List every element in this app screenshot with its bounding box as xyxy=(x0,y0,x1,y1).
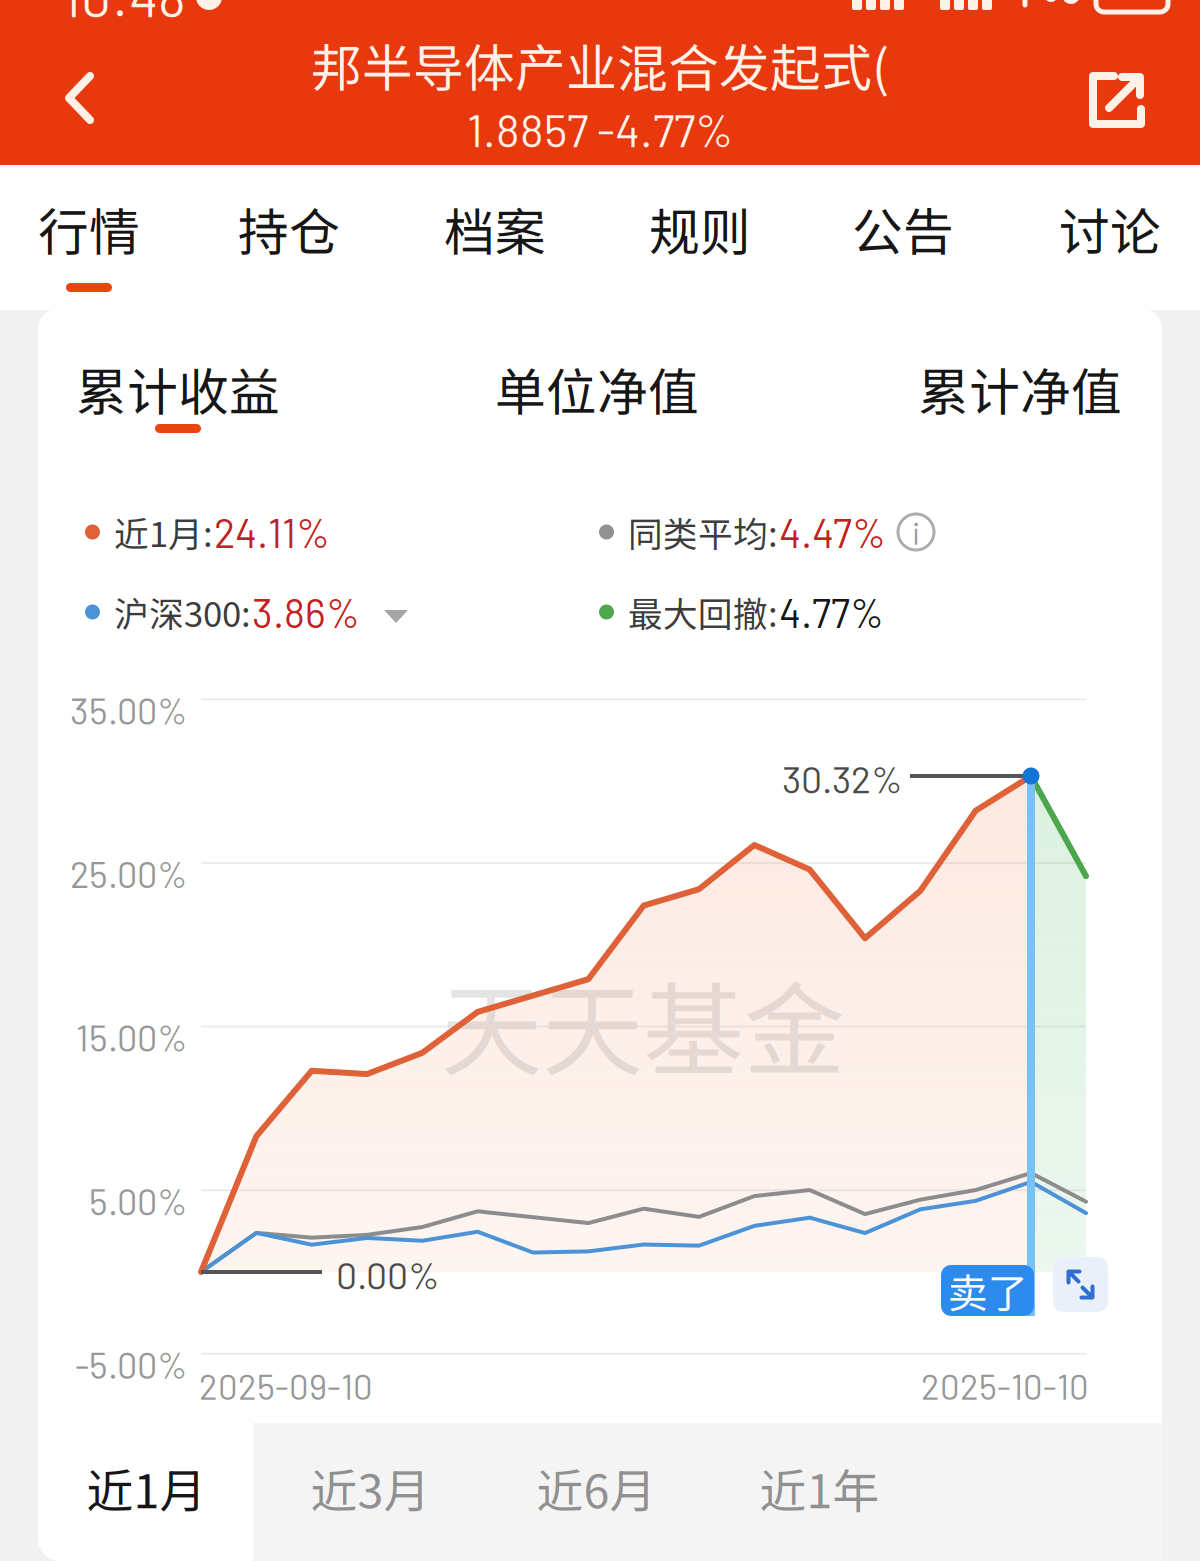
staticText: 档案 xyxy=(444,192,546,265)
staticText: 近1月 xyxy=(86,1454,206,1522)
button[interactable]: 公告 xyxy=(808,165,998,310)
staticText: 行情 xyxy=(38,192,140,265)
button[interactable]: 讨论 xyxy=(1015,165,1200,310)
staticText: 2025-09-10 xyxy=(199,1365,373,1407)
staticText: 近1年 xyxy=(759,1454,879,1522)
staticText: 30.32% xyxy=(782,756,903,801)
staticText: 25.00% xyxy=(70,852,188,895)
button[interactable]: 档案 xyxy=(400,165,590,310)
button[interactable]: Back xyxy=(20,43,140,153)
button[interactable]: 单位净值 xyxy=(477,352,717,444)
staticText: -5.00% xyxy=(75,1343,188,1386)
button[interactable]: 近1年 xyxy=(709,1419,930,1557)
staticText: 累计收益 xyxy=(76,352,280,425)
button[interactable]: 卖了 xyxy=(941,1265,1034,1316)
staticText: 0.00% xyxy=(336,1252,440,1297)
staticText: 15.00% xyxy=(76,1016,188,1059)
button[interactable]: 近3月 xyxy=(260,1419,481,1557)
staticText: 单位净值 xyxy=(495,352,699,425)
staticText: 沪深300: xyxy=(114,587,251,637)
staticText: 规则 xyxy=(649,192,751,265)
staticText: 天天基金 xyxy=(441,950,845,1097)
staticText: 卖了 xyxy=(947,1261,1027,1319)
button[interactable]: 近6月 xyxy=(486,1419,707,1557)
button[interactable]: 累计收益 xyxy=(58,352,298,444)
staticText: 近3月 xyxy=(310,1454,430,1522)
staticText: 邦半导体产业混合发起式( xyxy=(311,28,889,101)
staticText: 讨论 xyxy=(1059,192,1161,265)
staticText: 近1月: xyxy=(114,507,213,557)
button[interactable]: 规则 xyxy=(605,165,795,310)
staticText: 最大回撤: xyxy=(628,587,778,637)
staticText: 同类平均: xyxy=(628,507,778,557)
staticText: 5.00% xyxy=(89,1179,188,1222)
button[interactable]: 近1月 xyxy=(36,1419,257,1557)
staticText: 4.47% xyxy=(779,508,886,556)
button[interactable]: Share xyxy=(1062,45,1172,155)
staticText: 24.11% xyxy=(214,508,330,556)
staticText: 1.8857 -4.77% xyxy=(467,102,733,156)
staticText: 2025-10-10 xyxy=(921,1365,1089,1407)
button[interactable]: Fullscreen xyxy=(1053,1257,1108,1312)
staticText: 累计净值 xyxy=(918,352,1122,425)
staticText: 公告 xyxy=(852,192,954,265)
button[interactable]: 持仓 xyxy=(194,165,384,310)
staticText: 持仓 xyxy=(238,192,340,265)
staticText: 3.86% xyxy=(252,588,360,636)
staticText: i xyxy=(912,513,920,551)
staticText: 近6月 xyxy=(536,1454,656,1522)
staticText: 35.00% xyxy=(70,688,188,732)
button[interactable]: 累计净值 xyxy=(900,352,1140,444)
staticText: 10:48 xyxy=(62,0,186,28)
staticText: 4.77% xyxy=(779,588,884,636)
button[interactable]: 行情 xyxy=(0,165,184,310)
